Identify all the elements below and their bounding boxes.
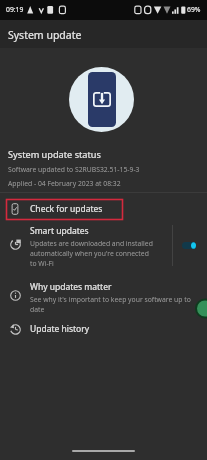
staticText: Software updated to S2RUBS32.51-15-9-3: [8, 165, 140, 174]
staticText: See why it's important to keep your soft…: [30, 295, 192, 314]
button[interactable]: Why updates matter: [0, 278, 207, 314]
button[interactable]: Check for updates: [0, 198, 207, 220]
staticText: Why updates matter: [30, 281, 112, 293]
staticText: System update: [8, 28, 82, 42]
button[interactable]: Update history: [0, 319, 207, 339]
staticText: Updates are downloaded and installed aut…: [30, 239, 157, 268]
staticText: Smart updates: [30, 225, 89, 237]
button[interactable]: Smart updates toggle: [177, 234, 203, 256]
staticText: Applied - 04 February 2023 at 08:32: [8, 179, 121, 188]
button[interactable]: System update: [0, 20, 207, 48]
staticText: Update history: [30, 323, 90, 335]
staticText: System update status: [8, 148, 101, 161]
staticText: 69%: [187, 5, 201, 14]
button[interactable]: Smart updates: [0, 222, 207, 268]
staticText: 09:19: [6, 5, 24, 14]
staticText: Check for updates: [30, 203, 103, 215]
